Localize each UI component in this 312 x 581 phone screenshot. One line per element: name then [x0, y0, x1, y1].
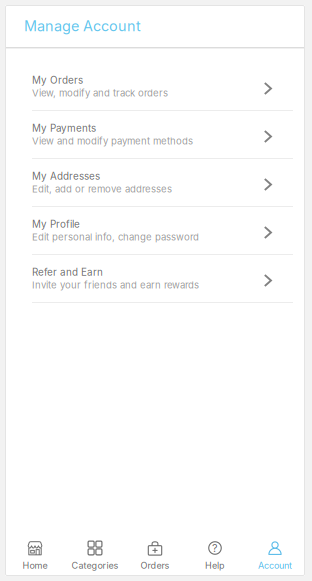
- staticText: Home: [22, 560, 47, 571]
- button[interactable]: My Orders: [5, 63, 305, 111]
- staticText: My Orders: [32, 74, 83, 86]
- button[interactable]: ?: [185, 530, 245, 576]
- staticText: Help: [205, 560, 225, 571]
- staticText: Edit personal info, change password: [32, 231, 199, 243]
- button[interactable]: Home: [5, 530, 65, 576]
- staticText: Categories: [71, 560, 118, 571]
- staticText: Edit, add or remove addresses: [32, 183, 172, 195]
- staticText: Refer and Earn: [32, 266, 103, 278]
- button[interactable]: Orders: [125, 530, 185, 576]
- button[interactable]: Account: [245, 530, 305, 576]
- staticText: Invite your friends and earn rewards: [32, 279, 199, 291]
- staticText: Account: [258, 560, 292, 571]
- staticText: My Profile: [32, 218, 80, 230]
- staticText: Manage Account: [24, 17, 141, 35]
- button[interactable]: My Profile: [5, 207, 305, 255]
- staticText: View and modify payment methods: [32, 135, 193, 147]
- staticText: ?: [212, 541, 218, 555]
- staticText: My Payments: [32, 122, 96, 134]
- button[interactable]: My Payments: [5, 111, 305, 159]
- staticText: Orders: [140, 560, 169, 571]
- button[interactable]: Refer and Earn: [5, 255, 305, 303]
- staticText: View, modify and track orders: [32, 87, 168, 99]
- button[interactable]: Categories: [65, 530, 125, 576]
- staticText: My Addresses: [32, 170, 100, 182]
- button[interactable]: My Addresses: [5, 159, 305, 207]
